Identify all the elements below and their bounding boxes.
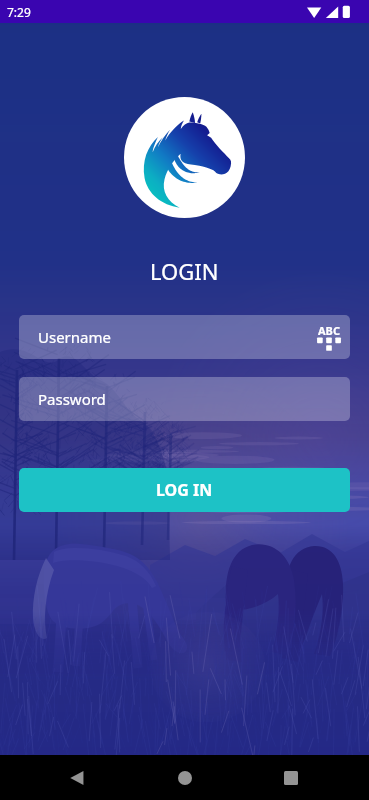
button[interactable]: Back: [70, 771, 84, 785]
button[interactable]: Switch keyboard: [317, 323, 341, 352]
button[interactable]: LOG IN: [19, 468, 350, 512]
staticText: Username: [38, 327, 111, 347]
staticText: 7:29: [7, 4, 31, 20]
button[interactable]: Recent apps: [284, 771, 298, 785]
button[interactable]: Username: [19, 315, 350, 359]
staticText: Password: [38, 389, 106, 409]
staticText: LOG IN: [156, 479, 213, 501]
button[interactable]: Password: [19, 377, 350, 421]
staticText: ABC: [318, 323, 340, 338]
button[interactable]: Home: [178, 771, 192, 785]
staticText: LOGIN: [150, 256, 219, 286]
